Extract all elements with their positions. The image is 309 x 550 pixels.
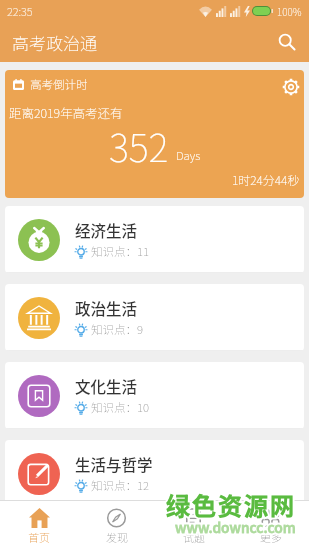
staticText: www.downcc.com bbox=[175, 517, 296, 537]
staticText: 知识点：9 bbox=[91, 321, 143, 338]
staticText: 22:35 bbox=[7, 3, 33, 19]
button[interactable]: 政治生活 bbox=[5, 284, 304, 351]
staticText: Days bbox=[176, 147, 201, 164]
staticText: www.downcc.com bbox=[175, 517, 296, 537]
button[interactable]: 首页 bbox=[0, 501, 78, 550]
button[interactable]: 更多 bbox=[232, 501, 309, 550]
button[interactable] bbox=[275, 30, 299, 54]
staticText: 政治生活 bbox=[75, 297, 138, 319]
staticText: 知识点：12 bbox=[91, 477, 149, 494]
staticText: 生活与哲学 bbox=[75, 453, 153, 475]
staticText: 1时24分44秒 bbox=[232, 171, 300, 188]
staticText: 知识点：10 bbox=[91, 399, 149, 416]
staticText: 首页 bbox=[28, 529, 50, 545]
staticText: 经济生活 bbox=[75, 219, 138, 241]
staticText: 距离2019年高考还有 bbox=[9, 103, 123, 121]
button[interactable]: 生活与哲学 bbox=[5, 440, 304, 507]
staticText: 100% bbox=[277, 4, 302, 18]
button[interactable]: 试题 bbox=[155, 501, 232, 550]
button[interactable]: 高考倒计时 bbox=[5, 70, 304, 198]
staticText: 发现 bbox=[106, 529, 128, 545]
staticText: 352 bbox=[109, 118, 169, 173]
staticText: 绿色资源网 bbox=[166, 487, 296, 522]
button[interactable]: 经济生活 bbox=[5, 206, 304, 273]
staticText: 高考政治通 bbox=[12, 30, 97, 55]
staticText: 绿色资源网 bbox=[166, 487, 296, 522]
button[interactable]: 发现 bbox=[78, 501, 155, 550]
staticText: 高考倒计时 bbox=[30, 76, 88, 93]
button[interactable]: 文化生活 bbox=[5, 362, 304, 429]
staticText: 更多 bbox=[260, 529, 282, 545]
staticText: 文化生活 bbox=[75, 375, 138, 397]
staticText: 试题 bbox=[183, 529, 205, 545]
staticText: 知识点：11 bbox=[91, 243, 149, 260]
button[interactable] bbox=[281, 77, 301, 97]
